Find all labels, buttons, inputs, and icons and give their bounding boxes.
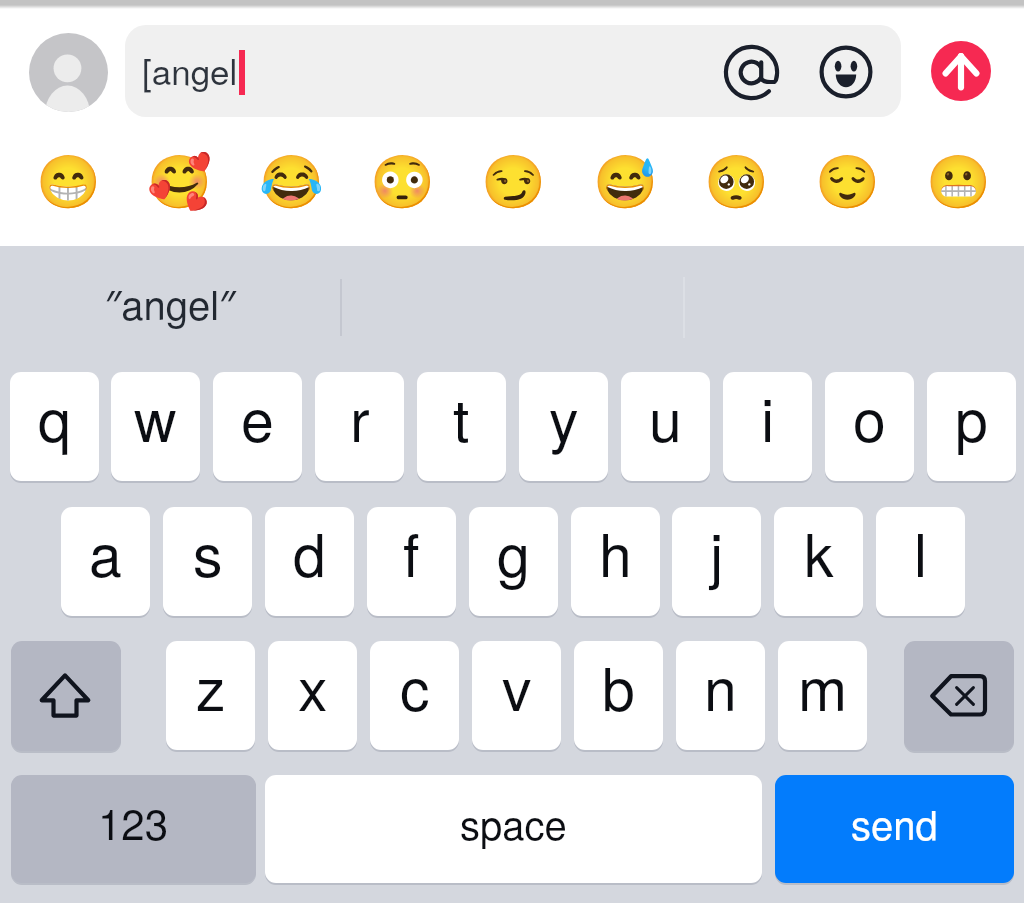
button[interactable]: Flushed face — [364, 149, 440, 215]
staticText: n — [704, 643, 737, 727]
button[interactable]: Smirking face — [475, 149, 551, 215]
staticText: s — [193, 509, 223, 593]
staticText: [angel — [142, 45, 238, 95]
staticText: q — [38, 374, 71, 458]
button[interactable]: s — [163, 507, 252, 616]
staticText: 😁 — [36, 152, 101, 213]
button[interactable]: n — [676, 641, 765, 750]
button[interactable]: z — [166, 641, 255, 750]
button[interactable]: Grimacing face — [920, 149, 996, 215]
staticText: y — [549, 374, 579, 458]
button[interactable]: u — [621, 372, 710, 481]
button[interactable]: w — [111, 372, 200, 481]
button[interactable]: Backspace — [904, 641, 1014, 751]
staticText: l — [914, 509, 928, 593]
staticText: k — [804, 509, 834, 593]
button[interactable]: h — [571, 507, 660, 616]
button[interactable]: j — [672, 507, 761, 616]
staticText: r — [350, 374, 370, 458]
button[interactable]: Emoji picker — [816, 42, 876, 102]
button[interactable]: [angel — [125, 25, 901, 117]
button[interactable]: d — [265, 507, 354, 616]
button[interactable]: g — [469, 507, 558, 616]
staticText: 😳 — [370, 152, 435, 213]
staticText: h — [599, 509, 632, 593]
staticText: e — [241, 374, 274, 458]
button[interactable]: v — [472, 641, 561, 750]
staticText: i — [761, 374, 775, 458]
button[interactable]: Profile picture — [29, 33, 108, 112]
button[interactable]: l — [876, 507, 965, 616]
button[interactable]: space — [265, 775, 762, 883]
staticText: x — [298, 643, 328, 727]
button[interactable]: t — [417, 372, 506, 481]
staticText: ″angel″ — [105, 274, 236, 332]
button[interactable]: r — [315, 372, 404, 481]
button[interactable]: f — [367, 507, 456, 616]
button[interactable]: Smiling face with hearts — [141, 149, 217, 215]
staticText: 😬 — [926, 152, 991, 213]
staticText: 😂 — [259, 152, 324, 213]
button[interactable]: m — [778, 641, 867, 750]
button[interactable]: k — [774, 507, 863, 616]
button[interactable]: Pleading face — [698, 149, 774, 215]
button[interactable]: Shift — [11, 641, 121, 751]
staticText: f — [403, 509, 420, 593]
staticText: p — [955, 374, 988, 458]
button[interactable]: Relieved face — [809, 149, 885, 215]
button[interactable]: 123 — [11, 775, 256, 883]
button[interactable]: Face with tears of joy — [253, 149, 329, 215]
staticText: g — [497, 509, 530, 593]
button[interactable]: x — [268, 641, 357, 750]
staticText: space — [460, 794, 567, 851]
staticText: 🥺 — [704, 152, 769, 213]
staticText: a — [89, 509, 122, 593]
staticText: m — [798, 643, 848, 727]
button[interactable]: c — [370, 641, 459, 750]
button[interactable]: e — [213, 372, 302, 481]
staticText: b — [602, 643, 635, 727]
button[interactable]: p — [927, 372, 1016, 481]
staticText: v — [502, 643, 532, 727]
button[interactable]: Grinning face with sweat — [587, 149, 663, 215]
staticText: w — [134, 374, 177, 458]
staticText: c — [400, 643, 430, 727]
staticText: 😏 — [481, 152, 546, 213]
staticText: 😌 — [815, 152, 880, 213]
button[interactable]: b — [574, 641, 663, 750]
button[interactable]: q — [10, 372, 99, 481]
staticText: t — [453, 374, 470, 458]
staticText: j — [710, 509, 724, 593]
button[interactable]: Beaming face — [30, 149, 106, 215]
staticText: 😅 — [593, 152, 658, 213]
button[interactable]: i — [723, 372, 812, 481]
staticText: d — [293, 509, 326, 593]
button[interactable]: send — [775, 775, 1014, 883]
button[interactable]: Send message — [931, 41, 991, 101]
staticText: z — [196, 643, 226, 727]
button[interactable]: Mention — [719, 40, 784, 105]
staticText: o — [853, 374, 886, 458]
staticText: send — [851, 794, 938, 851]
button[interactable]: a — [61, 507, 150, 616]
staticText: 🥰 — [147, 152, 212, 213]
button[interactable]: o — [825, 372, 914, 481]
button[interactable]: y — [519, 372, 608, 481]
staticText: u — [649, 374, 682, 458]
staticText: 123 — [98, 792, 169, 852]
